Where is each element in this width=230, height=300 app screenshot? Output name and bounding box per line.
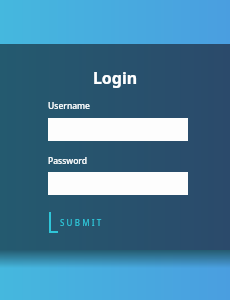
staticText: Login [0,67,230,300]
staticText: SUBMIT [60,217,104,228]
staticText: Password [48,155,88,167]
button[interactable]: SUBMIT [46,208,112,236]
staticText: Username [48,100,90,112]
